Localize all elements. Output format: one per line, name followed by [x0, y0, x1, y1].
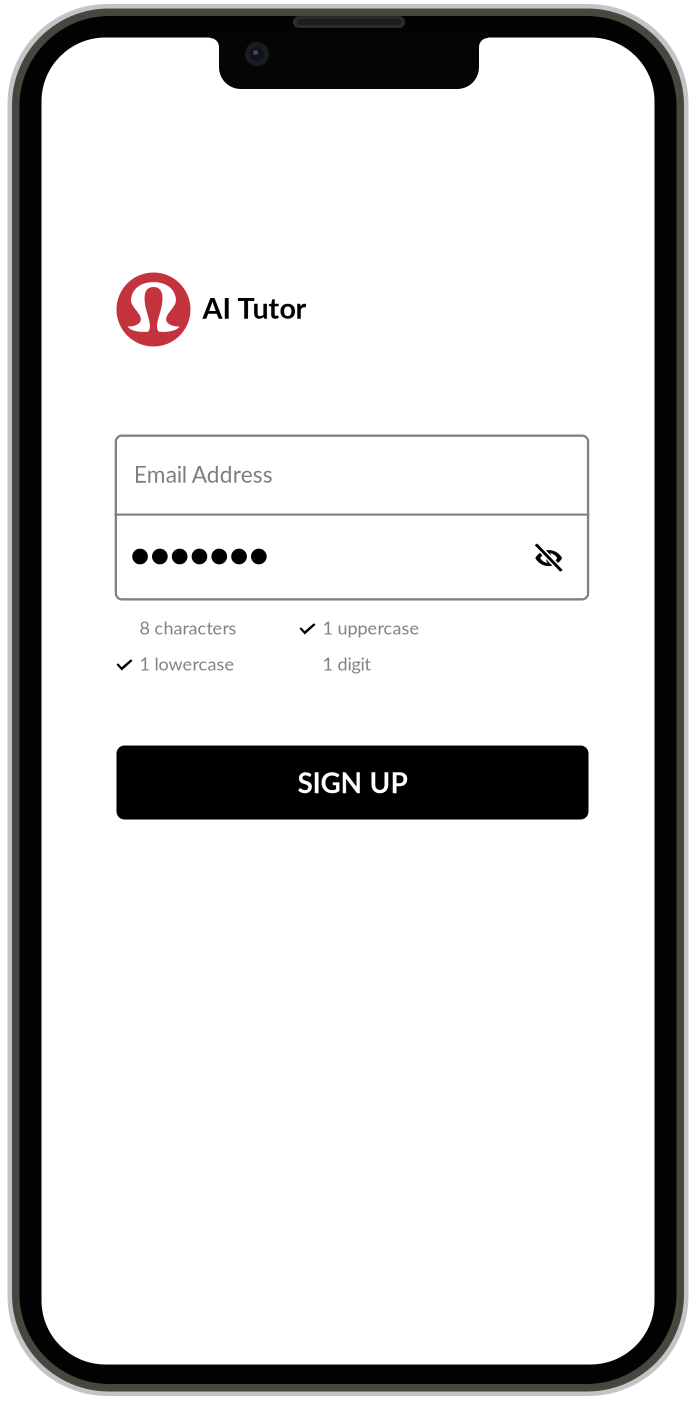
staticText: 1 lowercase [139, 653, 234, 674]
staticText: Email Address [134, 460, 273, 488]
staticText: 8 characters [139, 617, 236, 638]
staticText: 1 uppercase [322, 617, 419, 638]
button[interactable]: SIGN UP [116, 745, 588, 819]
staticText: SIGN UP [297, 766, 407, 799]
staticText: AI Tutor [202, 290, 306, 325]
button[interactable] [115, 516, 495, 600]
staticText: 1 digit [322, 653, 370, 674]
button[interactable]: Email Address [115, 434, 589, 513]
button[interactable]: Show password [527, 527, 589, 589]
